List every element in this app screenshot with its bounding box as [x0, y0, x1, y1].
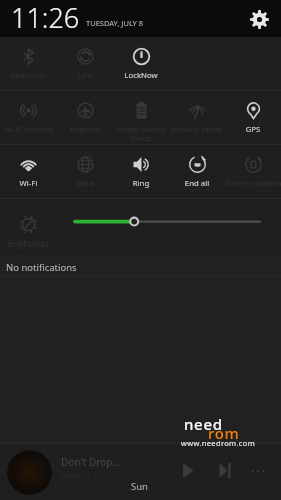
button[interactable]: Brightness [0, 199, 56, 253]
staticText: No notifications [6, 261, 77, 274]
staticText: rom [208, 423, 240, 443]
button[interactable]: Airplane [57, 91, 113, 144]
staticText: need [184, 414, 223, 434]
button[interactable]: Data [57, 145, 113, 198]
staticText: Data [57, 178, 113, 189]
staticText: Don't Drop... [61, 455, 121, 469]
staticText: Wi-Fi Hotspot [0, 124, 57, 135]
button[interactable]: End all [169, 145, 225, 198]
button[interactable]: Wi-Fi Hotspot [0, 91, 57, 144]
staticText: Brightness [0, 238, 56, 249]
button[interactable]: Wi-Fi [0, 145, 57, 198]
staticText: Sun [131, 480, 148, 493]
staticText: www.needrom.com [181, 438, 256, 448]
button[interactable]: Brightness slider [75, 199, 260, 245]
staticText: Screen rotation [225, 178, 281, 189]
button[interactable]: LockNow [113, 37, 169, 90]
button[interactable]: Settings [246, 6, 272, 32]
staticText: End all [169, 178, 225, 189]
button[interactable]: Bluetooth [0, 37, 57, 90]
staticText: TUESDAY, JULY 8 [86, 18, 144, 28]
button[interactable]: Ring [113, 145, 169, 198]
staticText: Holiday mode [169, 124, 225, 135]
staticText: 11:26 [11, 0, 80, 36]
staticText: Power saving mode [113, 124, 169, 144]
button[interactable]: Screen rotation [225, 145, 281, 198]
button[interactable]: Next [215, 460, 236, 481]
button[interactable]: Sync [57, 37, 113, 90]
staticText: Airplane [57, 124, 113, 135]
button[interactable]: More options [247, 460, 268, 481]
button[interactable]: Power saving mode [113, 91, 169, 144]
button[interactable]: Play [177, 460, 198, 481]
button[interactable]: Sun [131, 480, 148, 493]
button[interactable]: Holiday mode [169, 91, 225, 144]
staticText: Wi-Fi [0, 178, 57, 189]
staticText: GPS [225, 124, 281, 135]
staticText: LockNow [113, 70, 169, 81]
staticText: Ring [113, 178, 169, 189]
button[interactable]: GPS [225, 91, 281, 144]
staticText: Bluetooth [0, 70, 57, 81]
